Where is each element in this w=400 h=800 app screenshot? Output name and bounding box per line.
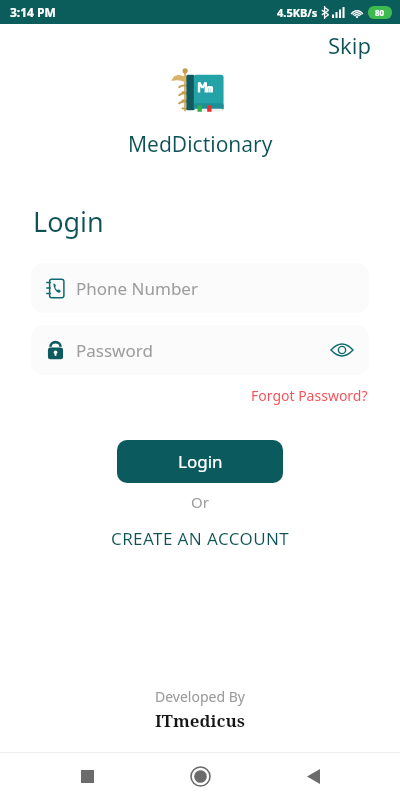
staticText: 4.5KB/s: [277, 5, 318, 20]
staticText: Skip: [328, 30, 372, 60]
staticText: Login: [33, 203, 104, 240]
staticText: Forgot Password?: [251, 386, 368, 405]
button[interactable]: Password: [31, 325, 369, 375]
staticText: 3:14 PM: [10, 4, 56, 20]
staticText: Or: [191, 492, 209, 512]
staticText: Password: [76, 339, 153, 362]
staticText: IT: [155, 709, 173, 732]
button[interactable]: Phone Number: [31, 263, 369, 313]
button[interactable]: Back: [293, 756, 333, 796]
button[interactable]: Forgot Password?: [249, 384, 370, 407]
staticText: CREATE AN ACCOUNT: [111, 527, 290, 550]
button[interactable]: Skip: [322, 27, 378, 63]
staticText: Developed By: [155, 687, 245, 706]
button[interactable]: Login: [117, 440, 283, 483]
button[interactable]: Home: [180, 756, 220, 796]
button[interactable]: Show password: [329, 337, 355, 363]
staticText: Login: [178, 450, 223, 473]
staticText: medicus: [173, 709, 245, 732]
staticText: Phone Number: [76, 277, 198, 300]
staticText: 80: [375, 7, 385, 18]
button[interactable]: CREATE AN ACCOUNT: [103, 523, 298, 554]
staticText: MedDictionary: [128, 130, 273, 159]
button[interactable]: Recents: [67, 756, 107, 796]
